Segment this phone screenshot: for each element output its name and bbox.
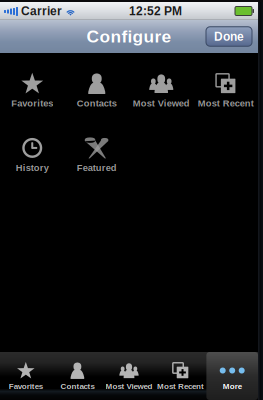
staticText: Contacts [60,382,94,391]
button[interactable]: Most Viewed [129,72,193,108]
staticText: Most Viewed [105,382,152,391]
button[interactable]: Most Recent [155,352,206,400]
button[interactable]: History [0,136,64,173]
button[interactable]: Done [206,27,252,46]
button[interactable]: Favorites [0,72,64,108]
staticText: Most Recent [198,98,254,108]
button[interactable]: Contacts [64,72,129,108]
staticText: Done [214,30,244,43]
staticText: Featured [77,162,117,173]
staticText: Configure [86,27,171,46]
staticText: Favorites [11,98,53,108]
staticText: Most Viewed [133,98,190,108]
staticText: Carrier [21,4,62,18]
staticText: More [223,382,242,391]
staticText: 12:52 PM [129,4,182,18]
button[interactable]: Featured [64,136,129,173]
button[interactable]: More [206,352,258,400]
button[interactable]: Most Viewed [103,352,155,400]
staticText: Contacts [77,98,117,108]
button[interactable]: Most Recent [193,72,258,108]
button[interactable]: Favorites [0,352,52,400]
staticText: Favorites [9,382,43,391]
button[interactable]: Contacts [52,352,103,400]
staticText: History [16,162,49,173]
staticText: Most Recent [157,382,204,391]
